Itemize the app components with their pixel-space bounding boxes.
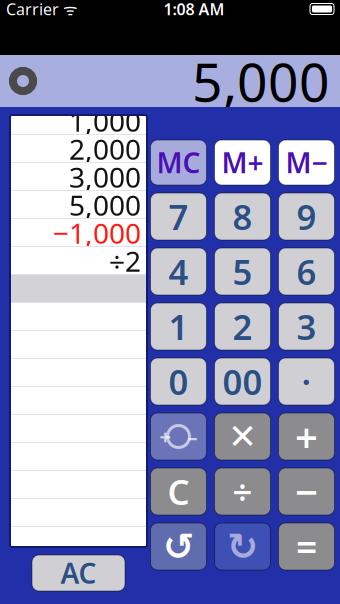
button[interactable]: MC [150, 140, 206, 185]
button[interactable]: Toggle sign [150, 413, 206, 460]
button[interactable]: AC [32, 555, 125, 591]
button[interactable]: 00 [214, 358, 270, 405]
staticText: 8 [232, 193, 252, 239]
staticText: ᯤ [59, 0, 78, 20]
staticText: 4 [168, 248, 188, 294]
staticText: 9 [296, 193, 316, 239]
button[interactable]: Add [278, 413, 334, 460]
staticText: AC [60, 554, 96, 592]
staticText: ✕ [228, 417, 257, 456]
button[interactable]: 9 [278, 193, 334, 240]
button[interactable]: 6 [278, 248, 334, 295]
staticText: Carrier [6, 0, 59, 20]
button[interactable]: Settings [0, 55, 46, 107]
button[interactable]: Multiply [214, 413, 270, 460]
button[interactable]: M− [278, 140, 334, 185]
button[interactable]: Redo [214, 523, 270, 570]
staticText: · [301, 358, 311, 404]
staticText: ÷ [232, 468, 252, 514]
staticText: ÷2 [109, 242, 141, 280]
staticText: 5 [232, 248, 252, 294]
staticText: 5,000 [69, 186, 141, 224]
button[interactable]: 4 [150, 248, 206, 295]
staticText: 6 [296, 248, 316, 294]
staticText: 2,000 [69, 130, 141, 168]
staticText: 5,000 [192, 46, 330, 116]
button[interactable]: Subtract [278, 468, 334, 515]
button[interactable]: Clear [150, 468, 206, 515]
button[interactable]: 2 [214, 303, 270, 350]
staticText: 3,000 [69, 158, 141, 196]
staticText: ↻ [227, 525, 258, 568]
staticText: − [295, 465, 318, 518]
staticText: 7 [168, 193, 188, 239]
staticText: = [296, 522, 317, 571]
button[interactable]: 1 [150, 303, 206, 350]
button[interactable]: 5 [214, 248, 270, 295]
button[interactable]: M+ [214, 140, 270, 185]
staticText: ↺ [163, 525, 194, 568]
staticText: M+ [221, 144, 263, 181]
staticText: – [187, 423, 197, 450]
button[interactable]: 8 [214, 193, 270, 240]
staticText: 00 [222, 358, 262, 404]
button[interactable]: 0 [150, 358, 206, 405]
staticText: 3 [296, 303, 316, 349]
staticText: 1,000 [69, 102, 141, 140]
staticText: 1 [168, 303, 188, 349]
staticText: −1,000 [53, 214, 141, 252]
staticText: 0 [168, 358, 188, 404]
button[interactable]: 7 [150, 193, 206, 240]
button[interactable]: Undo [150, 523, 206, 570]
button[interactable]: 3 [278, 303, 334, 350]
staticText: + [159, 423, 170, 450]
button[interactable]: Divide [214, 468, 270, 515]
staticText: 2 [232, 303, 252, 349]
staticText: + [295, 410, 318, 463]
button[interactable]: Equals [278, 523, 334, 570]
button[interactable]: · [278, 358, 334, 405]
staticText: MC [156, 144, 200, 181]
staticText: M− [285, 144, 327, 181]
staticText: C [167, 468, 189, 514]
staticText: 1:08 AM [163, 0, 224, 20]
